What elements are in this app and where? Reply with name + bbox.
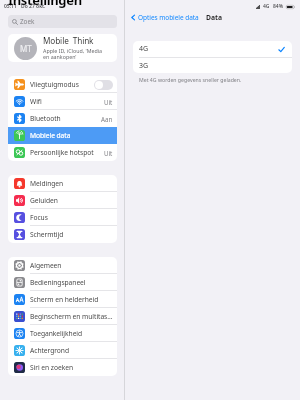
staticText: Meldingen [30,179,64,188]
button[interactable]: Algemeen [8,257,117,274]
button[interactable]: 4G [133,41,292,57]
button[interactable]: Vliegtuigmodus [8,76,117,93]
button[interactable]: Toegankelijkheid [8,325,117,342]
button[interactable]: Siri en zoeken [8,359,117,376]
staticText: 84% [273,3,284,10]
button[interactable]: 3G [133,58,292,73]
staticText: Scherm en helderheid [30,295,99,304]
staticText: Opties mobiele data [138,13,199,22]
staticText: MT [20,43,32,54]
button[interactable]: Opties mobiele data [125,13,201,22]
staticText: Persoonlijke hotspot [30,148,94,157]
staticText: 3G [139,61,149,71]
button[interactable]: Bedieningspaneel [8,274,117,291]
staticText: Algemeen [30,261,62,270]
button[interactable]: Persoonlijke hotspot [8,144,117,161]
button[interactable]: Focus [8,209,117,226]
staticText: Siri en zoeken [30,363,74,372]
staticText: Beginscherm en multitas... [30,312,113,321]
button[interactable]: Vliegtuigmodus aan/uit [94,80,113,90]
staticText: Mobile Think [43,35,94,46]
staticText: Uit [104,98,113,106]
staticText: Vliegtuigmodus [30,80,79,89]
button[interactable]: Scherm en helderheid [8,291,117,308]
staticText: Geluiden [30,196,58,205]
staticText: Data [206,13,223,22]
staticText: 4G [263,3,270,10]
button[interactable]: Achtergrond [8,342,117,359]
button[interactable]: Bluetooth [8,110,117,127]
staticText: Bluetooth [30,114,61,123]
button[interactable]: Schermtijd [8,226,117,243]
staticText: Aan [101,115,113,123]
button[interactable]: Meldingen [8,175,117,192]
staticText: Wifi [30,97,42,106]
button[interactable]: Geluiden [8,192,117,209]
staticText: Achtergrond [30,346,69,355]
button[interactable]: Wifi [8,93,117,110]
button[interactable]: Beginscherm en multitas... [8,308,117,325]
staticText: Met 4G worden gegevens sneller geladen. [139,76,242,83]
staticText: Apple ID, iCloud, 'Media en aankopen' [43,47,103,61]
staticText: Mobiele data [30,131,71,140]
button[interactable]: Mobiele data [8,127,117,144]
staticText: Schermtijd [30,230,64,239]
button[interactable]: Zoek [8,15,117,28]
staticText: Bedieningspaneel [30,278,86,287]
staticText: 4G [139,44,149,54]
staticText: Focus [30,213,48,222]
staticText: Do 27 okt. [21,3,46,10]
staticText: Uit [104,149,113,157]
staticText: Instellingen [8,0,82,9]
button[interactable]: MT [8,34,117,62]
staticText: Zoek [20,17,35,26]
staticText: Toegankelijkheid [30,329,83,338]
staticText: 05:11 [4,3,17,10]
